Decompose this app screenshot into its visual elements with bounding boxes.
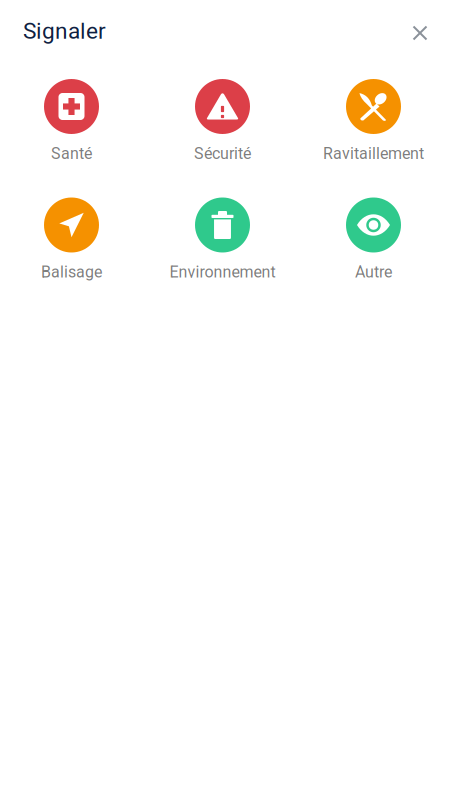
button[interactable]: Signaler	[23, 18, 106, 44]
button[interactable]: Fermer	[401, 14, 438, 51]
button[interactable]: Sécurité	[152, 79, 292, 183]
staticText: Environnement	[169, 263, 275, 281]
staticText: Balisage	[41, 263, 102, 281]
button[interactable]: Balisage	[1, 197, 141, 301]
staticText: Sécurité	[194, 144, 251, 163]
staticText: Ravitaillement	[323, 144, 424, 163]
staticText: Signaler	[23, 18, 106, 44]
staticText: Santé	[51, 144, 92, 163]
button[interactable]: Environnement	[152, 197, 292, 301]
button[interactable]: Santé	[1, 79, 141, 183]
staticText: Autre	[355, 263, 392, 281]
button[interactable]: Autre	[303, 197, 443, 301]
button[interactable]: Ravitaillement	[303, 79, 443, 183]
